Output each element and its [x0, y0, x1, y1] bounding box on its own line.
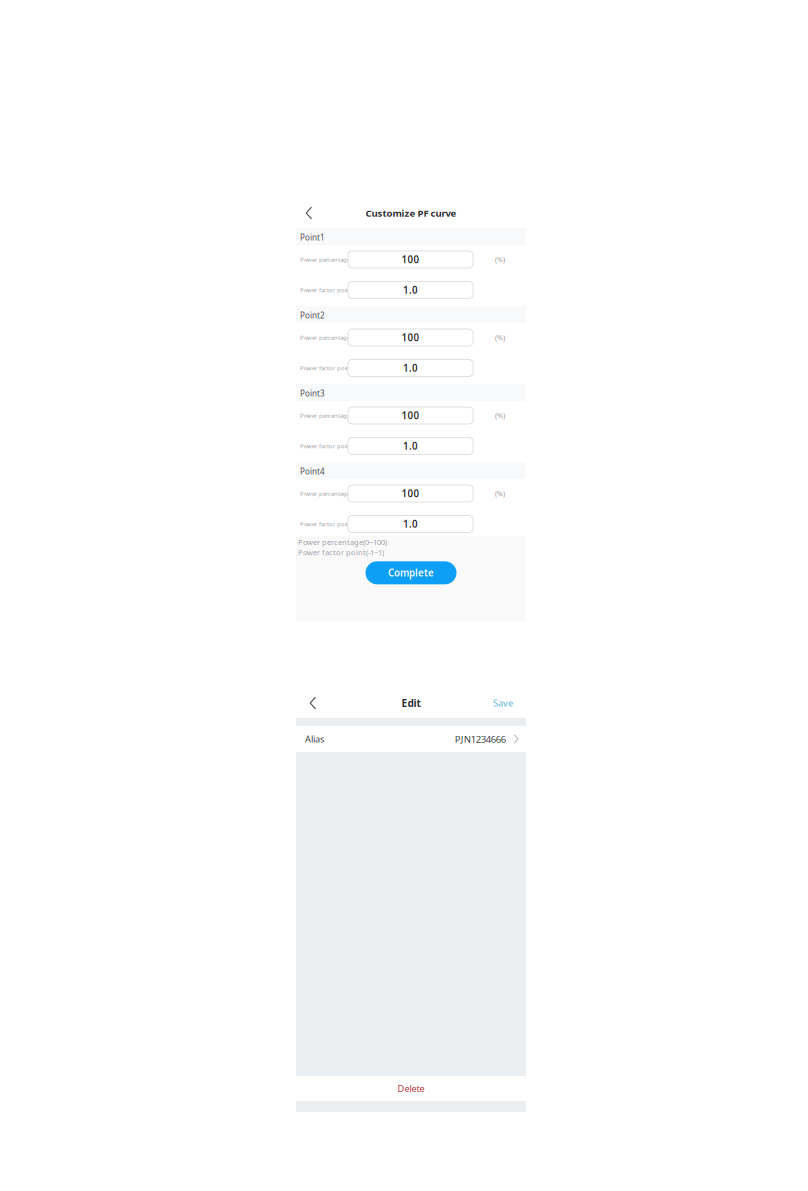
- staticText: Point1: [300, 232, 325, 243]
- button[interactable]: Alias: [296, 726, 526, 752]
- button[interactable]: Back: [296, 688, 330, 718]
- button[interactable]: Delete: [296, 1076, 526, 1101]
- staticText: (%): [495, 255, 505, 264]
- staticText: 1.0: [403, 517, 418, 531]
- staticText: Delete: [397, 1082, 424, 1095]
- staticText: (%): [495, 489, 505, 498]
- staticText: Point2: [300, 310, 325, 321]
- staticText: Power factor point(-1~1): [298, 547, 384, 557]
- staticText: 1.0: [403, 439, 418, 453]
- button[interactable]: Save: [480, 688, 526, 718]
- button[interactable]: Complete: [365, 561, 456, 584]
- staticText: Power percentage: [300, 256, 350, 263]
- staticText: Power factor point: [300, 442, 352, 450]
- staticText: Power factor point: [300, 520, 352, 528]
- button[interactable]: Back: [296, 198, 322, 228]
- staticText: 1.0: [403, 283, 418, 297]
- staticText: Power percentage: [300, 490, 350, 497]
- staticText: Power percentage: [300, 334, 350, 341]
- staticText: Customize PF curve: [365, 206, 456, 220]
- staticText: Save: [493, 697, 513, 709]
- staticText: Alias: [305, 733, 324, 745]
- staticText: 100: [401, 331, 419, 344]
- staticText: Edit: [401, 696, 420, 710]
- staticText: 100: [401, 487, 419, 500]
- staticText: Power percentage: [300, 412, 350, 419]
- staticText: 100: [401, 253, 419, 266]
- staticText: Point4: [300, 466, 325, 477]
- staticText: Power percentage(0~100): [298, 537, 387, 547]
- staticText: Power factor point: [300, 286, 352, 294]
- staticText: Point3: [300, 388, 325, 399]
- staticText: 1.0: [403, 361, 418, 375]
- staticText: (%): [495, 411, 505, 420]
- staticText: Complete: [388, 566, 434, 579]
- staticText: 100: [401, 409, 419, 422]
- staticText: PJN1234666: [455, 732, 506, 746]
- staticText: (%): [495, 333, 505, 342]
- staticText: Power factor point: [300, 364, 352, 372]
